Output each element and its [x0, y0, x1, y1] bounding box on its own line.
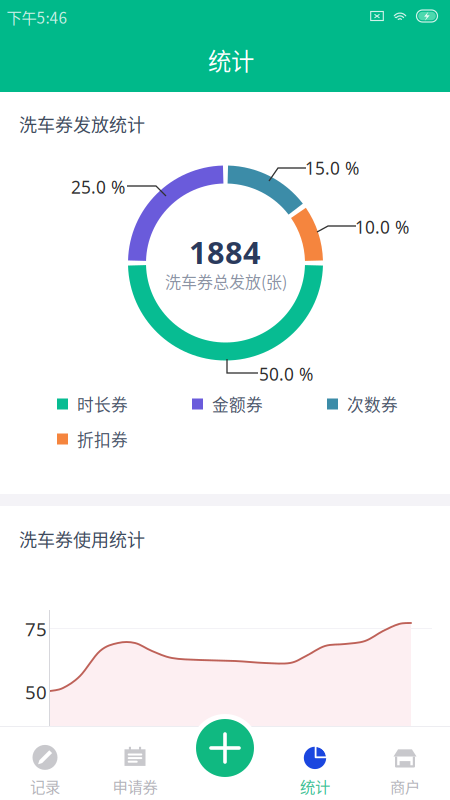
button[interactable]: 统计	[270, 726, 360, 800]
staticText: 折扣券	[77, 427, 128, 451]
staticText: 50	[25, 680, 47, 704]
staticText: 记录	[30, 775, 60, 797]
staticText: 时长券	[77, 392, 128, 416]
staticText: 商户	[390, 775, 420, 797]
staticText: 75	[25, 617, 47, 641]
staticText: 洗车券总发放(张)	[165, 269, 287, 293]
button[interactable]: 申请券	[90, 726, 180, 800]
staticText: 洗车券使用统计	[19, 526, 145, 552]
staticText: 次数券	[347, 392, 398, 416]
staticText: 洗车券发放统计	[19, 111, 145, 137]
staticText: 15.0 %	[305, 156, 359, 179]
button[interactable]: Add	[191, 714, 259, 782]
button[interactable]: 记录	[0, 726, 90, 800]
staticText: 10.0 %	[355, 215, 409, 238]
staticText: 统计	[208, 43, 254, 77]
staticText: 统计	[300, 775, 330, 797]
staticText: 50.0 %	[259, 362, 313, 385]
staticText: 25.0 %	[71, 175, 125, 198]
staticText: 金额券	[212, 392, 263, 416]
button[interactable]: 商户	[360, 726, 450, 800]
staticText: 1884	[189, 232, 261, 272]
staticText: 下午5:46	[6, 6, 67, 28]
staticText: 申请券	[112, 775, 157, 797]
